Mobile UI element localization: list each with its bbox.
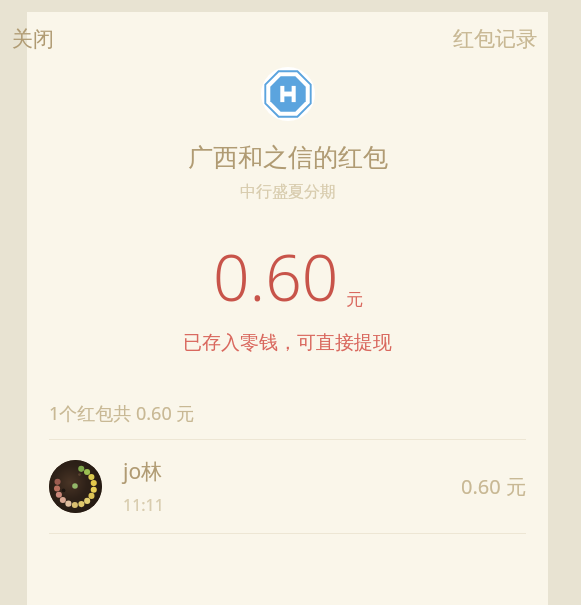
staticText: 广西和之信的红包	[188, 142, 388, 173]
staticText: 0.60 元	[461, 473, 526, 500]
staticText: jo林	[123, 457, 163, 486]
staticText: 关闭	[12, 26, 54, 52]
staticText: 中行盛夏分期	[240, 182, 336, 202]
button[interactable]: 关闭	[10, 20, 56, 58]
staticText: 1个红包共 0.60 元	[49, 401, 195, 426]
button[interactable]: jo林	[27, 440, 548, 533]
staticText: 红包记录	[453, 26, 537, 52]
staticText: 11:11	[123, 494, 164, 516]
staticText: 元	[346, 289, 363, 310]
staticText: 0.60	[213, 233, 339, 320]
button[interactable]: 红包记录	[451, 20, 539, 58]
staticText: 已存入零钱，可直接提现	[183, 331, 392, 355]
